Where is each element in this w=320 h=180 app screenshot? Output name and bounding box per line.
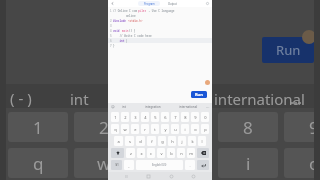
staticText: c xyxy=(150,151,152,156)
button[interactable]: Hide keyboard xyxy=(190,173,197,180)
staticText: 5 xyxy=(110,34,112,38)
button[interactable]: English (US) xyxy=(136,160,183,170)
staticText: 2 xyxy=(124,115,127,120)
button[interactable]: More suggestions xyxy=(205,105,210,110)
button[interactable]: v xyxy=(157,148,165,158)
staticText: // Online C com xyxy=(113,9,138,13)
staticText: u xyxy=(174,127,177,132)
staticText: int xyxy=(113,39,126,43)
button[interactable]: Enter xyxy=(197,160,209,170)
button[interactable]: Run xyxy=(191,91,207,98)
button[interactable]: 4 xyxy=(141,112,149,122)
button[interactable]: y xyxy=(161,124,169,134)
button[interactable]: s xyxy=(125,136,134,146)
staticText: q xyxy=(114,127,117,132)
button[interactable]: e xyxy=(131,124,139,134)
staticText: d xyxy=(139,139,142,144)
button[interactable]: q xyxy=(111,124,119,134)
staticText: e xyxy=(165,152,175,175)
button[interactable]: g xyxy=(158,136,166,146)
staticText: | xyxy=(126,39,128,43)
staticText: online xyxy=(113,14,136,18)
button[interactable]: Backspace xyxy=(197,148,209,158)
button[interactable]: h xyxy=(168,136,176,146)
button[interactable]: Shift xyxy=(111,148,124,158)
button[interactable]: Home xyxy=(145,173,152,180)
staticText: 1 xyxy=(114,115,117,120)
staticText: 0 xyxy=(204,115,207,120)
button[interactable]: 6 xyxy=(161,112,169,122)
button[interactable]: 9 xyxy=(191,112,199,122)
button[interactable]: b xyxy=(167,148,175,158)
staticText: void xyxy=(113,29,122,33)
staticText: 3 xyxy=(165,116,175,139)
staticText: international xyxy=(179,105,198,109)
button[interactable]: 7 xyxy=(171,112,179,122)
button[interactable]: Back xyxy=(123,173,130,180)
button[interactable]: 5 xyxy=(151,112,159,122)
button[interactable]: z xyxy=(126,148,135,158)
staticText: 9 xyxy=(309,116,319,139)
button[interactable]: Emoji xyxy=(110,104,116,110)
button[interactable]: 1 xyxy=(111,112,119,122)
button[interactable]: c xyxy=(147,148,155,158)
staticText: Run xyxy=(276,41,301,59)
button[interactable]: Program xyxy=(138,1,160,6)
button[interactable]: f xyxy=(147,136,156,146)
staticText: ⋯ xyxy=(206,106,210,110)
button[interactable]: j xyxy=(178,136,186,146)
other: Shift xyxy=(116,151,120,155)
button[interactable]: 0 xyxy=(201,112,209,122)
staticText: n xyxy=(180,151,183,156)
other: Enter xyxy=(201,163,206,168)
button[interactable]: m xyxy=(187,148,195,158)
button[interactable]: a xyxy=(114,136,123,146)
button[interactable]: Recents xyxy=(168,173,175,180)
staticText: () { xyxy=(129,29,136,33)
staticText: x xyxy=(140,151,143,156)
staticText: ☺ xyxy=(111,105,115,109)
staticText: !#1 xyxy=(115,163,119,167)
button[interactable]: u xyxy=(171,124,179,134)
button[interactable]: t xyxy=(151,124,159,134)
staticText: Program xyxy=(144,2,155,6)
button[interactable]: k xyxy=(188,136,196,146)
button[interactable]: 8 xyxy=(181,112,189,122)
staticText: t xyxy=(154,127,156,132)
staticText: main xyxy=(122,29,129,33)
staticText: 1 xyxy=(110,9,112,13)
staticText: ... xyxy=(290,88,303,108)
staticText: w xyxy=(123,127,127,132)
button[interactable]: , xyxy=(124,160,134,170)
button[interactable]: n xyxy=(177,148,185,158)
staticText: p xyxy=(204,127,207,132)
staticText: 6 xyxy=(164,115,167,120)
button[interactable]: d xyxy=(136,136,145,146)
button[interactable]: r xyxy=(141,124,149,134)
button[interactable]: w xyxy=(121,124,129,134)
other: Backspace xyxy=(201,151,206,155)
button[interactable]: l xyxy=(198,136,206,146)
staticText: international xyxy=(214,89,305,109)
staticText: // Write C code here xyxy=(113,34,152,38)
button[interactable]: p xyxy=(201,124,209,134)
button[interactable]: More options xyxy=(205,1,210,6)
staticText: Run xyxy=(195,92,203,97)
staticText: q xyxy=(33,152,44,175)
staticText: <stdio.h> xyxy=(128,19,143,23)
staticText: g xyxy=(161,139,164,144)
staticText: ( - ) xyxy=(10,88,32,108)
button[interactable]: Output xyxy=(163,1,181,6)
staticText: piler xyxy=(138,9,147,13)
staticText: o xyxy=(309,152,320,175)
button[interactable]: Back xyxy=(110,1,115,6)
button[interactable]: i xyxy=(181,124,189,134)
staticText: m xyxy=(189,151,193,156)
button[interactable]: Assistant xyxy=(205,80,210,85)
button[interactable]: o xyxy=(191,124,199,134)
button[interactable]: !#1 xyxy=(111,160,122,170)
button[interactable]: 2 xyxy=(121,112,129,122)
button[interactable]: 3 xyxy=(131,112,139,122)
button[interactable]: x xyxy=(137,148,145,158)
